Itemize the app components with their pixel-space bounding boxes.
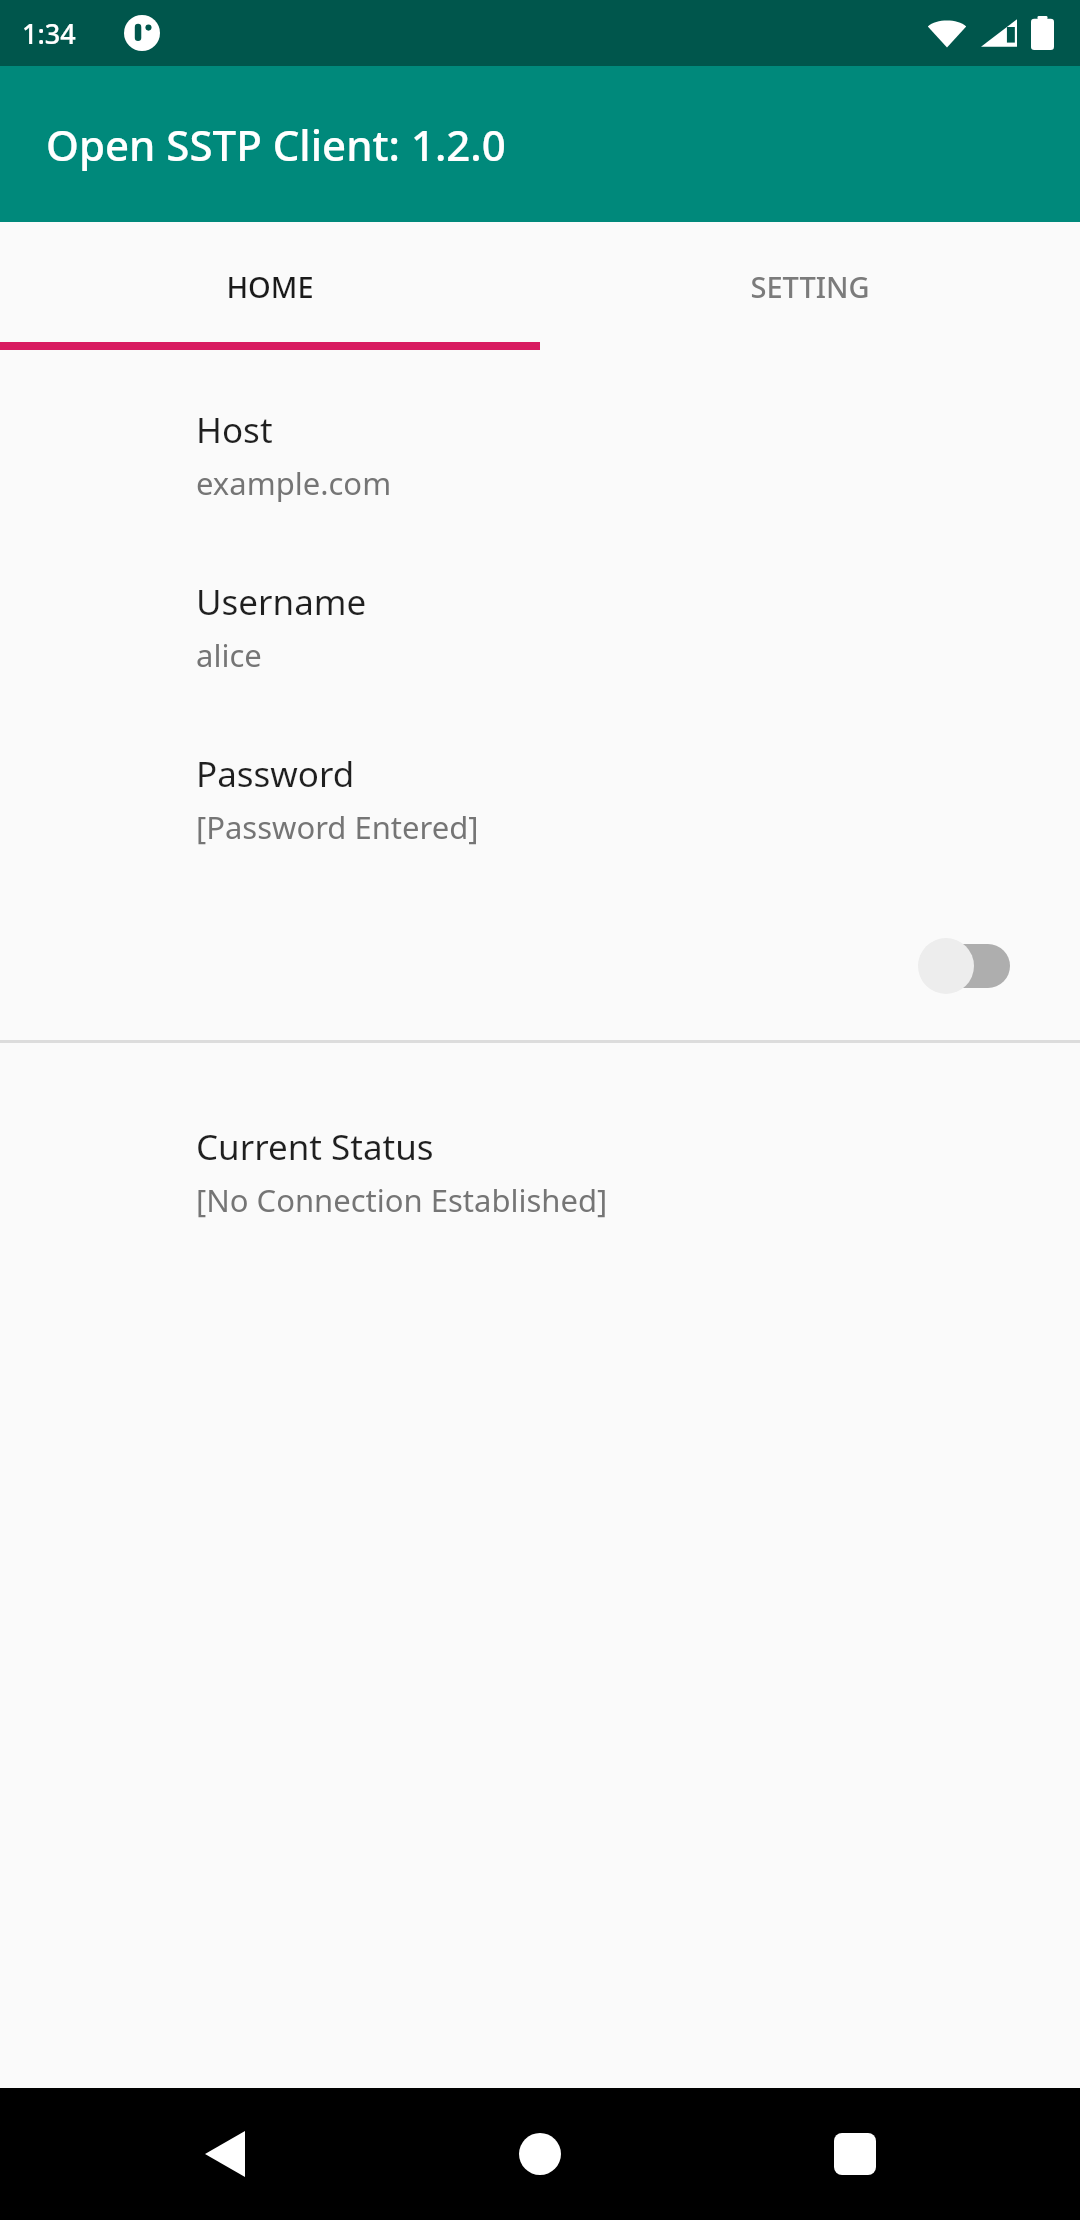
button[interactable]: HOME [0, 222, 540, 350]
staticText: 1:34 [22, 15, 76, 52]
staticText: Password [196, 750, 355, 798]
staticText: [No Connection Established] [196, 1179, 608, 1221]
staticText: HOME [226, 267, 314, 306]
staticText: Username [196, 578, 367, 626]
staticText: Current Status [196, 1123, 434, 1171]
staticText: Host [196, 406, 273, 454]
staticText: Open SSTP Client: 1.2.0 [46, 116, 506, 173]
button[interactable]: Current Status [0, 1115, 1080, 1287]
button[interactable]: Password [0, 742, 1080, 914]
staticText: SETTING [750, 267, 870, 306]
button[interactable]: SETTING [540, 222, 1080, 350]
staticText: alice [196, 634, 262, 676]
button[interactable]: Home [470, 2088, 610, 2220]
staticText: example.com [196, 462, 392, 504]
button[interactable]: Host [0, 398, 1080, 570]
button[interactable]: Username [0, 570, 1080, 742]
staticText: [Password Entered] [196, 806, 479, 848]
button[interactable]: Toggle VPN connection [0, 914, 1080, 1018]
button[interactable]: Back [155, 2088, 295, 2220]
button[interactable]: Recent apps [785, 2088, 925, 2220]
